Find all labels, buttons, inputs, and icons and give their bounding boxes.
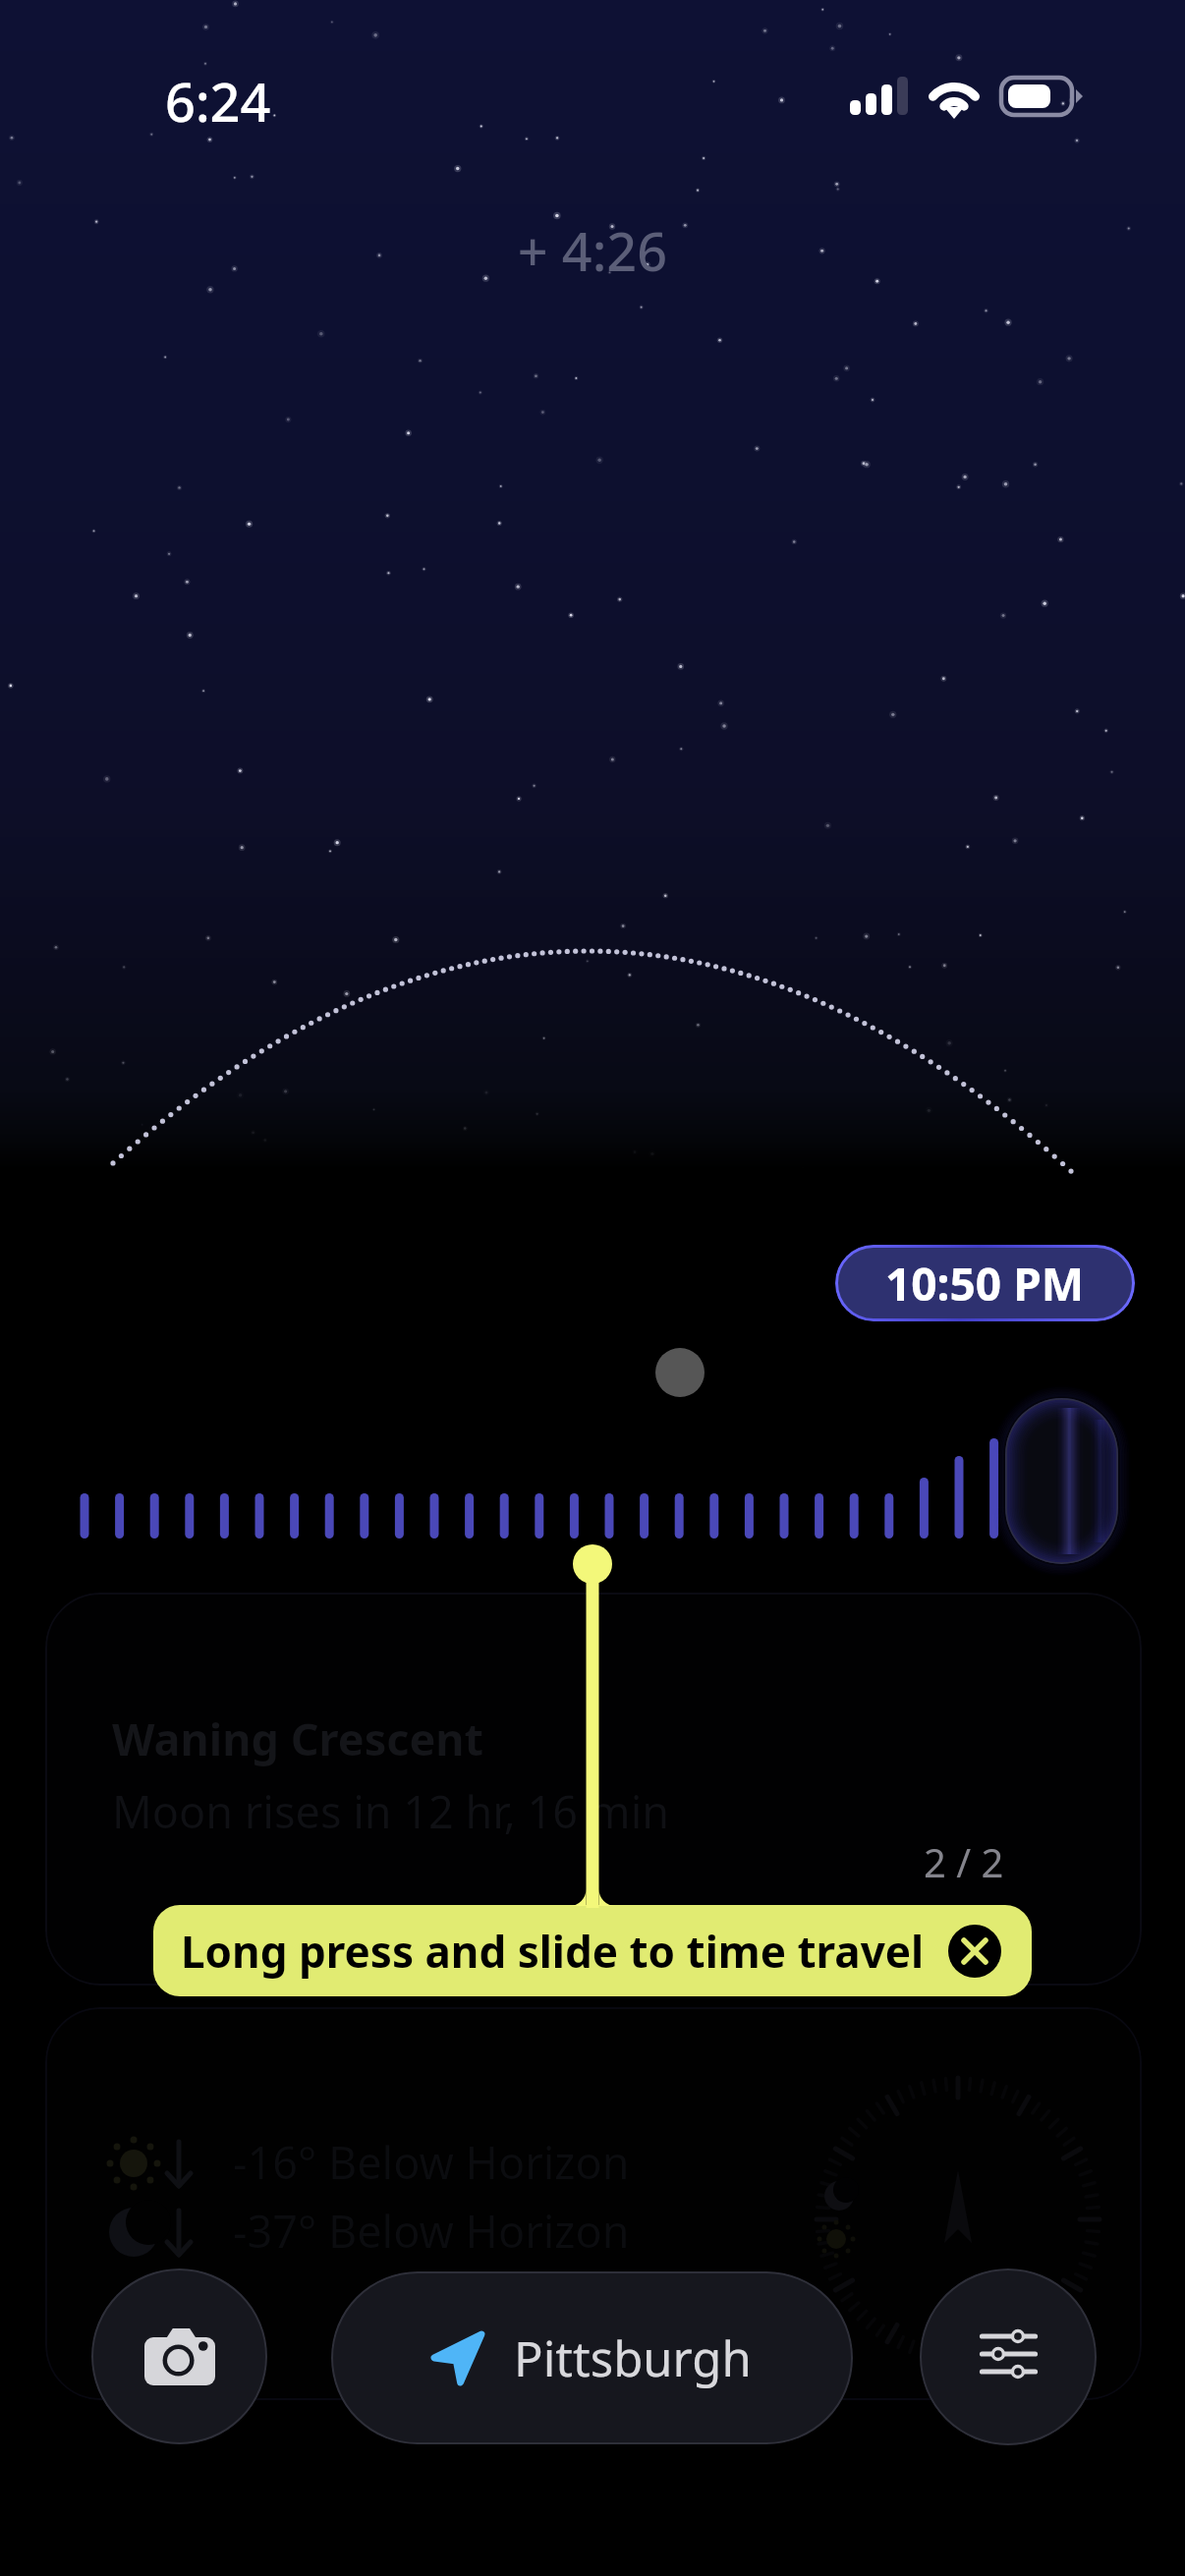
button[interactable]: Waning Crescent: [45, 1593, 1142, 1986]
button[interactable]: 10:50 PM: [835, 1245, 1135, 1321]
button[interactable]: Settings: [920, 2268, 1097, 2445]
staticText: Long press and slide to time travel: [181, 1922, 925, 1981]
staticText: -37° Below Horizon: [233, 2201, 630, 2261]
button[interactable]: Long press and slide to time travel: [153, 1905, 1032, 1996]
staticText: + 4:26: [0, 214, 1185, 287]
staticText: 6:24: [165, 65, 271, 138]
button[interactable]: -16° Below Horizon: [45, 2007, 1142, 2400]
button[interactable]: Camera: [91, 2268, 267, 2444]
staticText: -16° Below Horizon: [233, 2132, 630, 2192]
button[interactable]: Pittsburgh: [331, 2271, 853, 2444]
staticText: Waning Crescent: [112, 1708, 484, 1768]
staticText: 10:50 PM: [885, 1253, 1085, 1315]
staticText: Moon rises in 12 hr, 16 min: [112, 1781, 670, 1841]
staticText: Pittsburgh: [514, 2325, 752, 2391]
button[interactable]: Dismiss tip: [948, 1925, 1001, 1978]
staticText: 2 / 2: [924, 1835, 1004, 1888]
